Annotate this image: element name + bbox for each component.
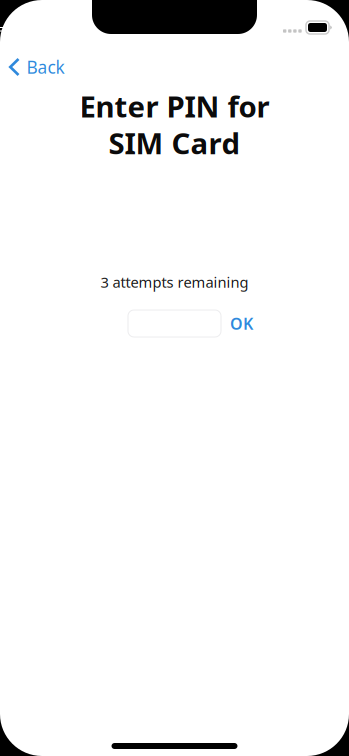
button[interactable]: Back	[0, 51, 90, 83]
staticText: SIM Card	[108, 123, 240, 162]
staticText: Back	[26, 55, 64, 78]
staticText: Enter PIN for	[79, 86, 269, 125]
button[interactable]: OK	[221, 310, 259, 337]
staticText: OK	[230, 313, 253, 334]
staticText: 3 attempts remaining	[100, 272, 248, 292]
